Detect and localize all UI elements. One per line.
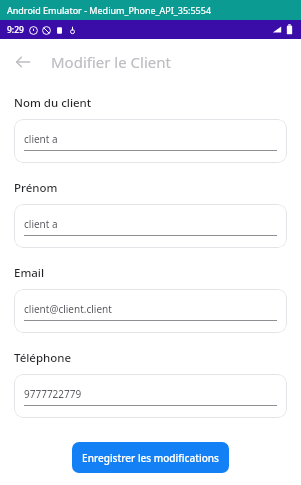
button[interactable]: 9777722779: [14, 374, 287, 418]
staticText: Nom du client: [14, 95, 92, 111]
staticText: Modifier le Client: [51, 52, 171, 72]
button[interactable]: Enregistrer les modifications: [72, 442, 229, 473]
staticText: Prénom: [14, 180, 58, 196]
staticText: client a: [24, 217, 58, 231]
staticText: client a: [24, 132, 58, 146]
button[interactable]: client a: [14, 119, 287, 163]
staticText: Enregistrer les modifications: [82, 451, 219, 465]
staticText: Android Emulator - Medium_Phone_API_35:5…: [7, 4, 212, 16]
staticText: Email: [14, 265, 45, 281]
button[interactable]: client a: [14, 204, 287, 248]
staticText: client@client.client: [24, 302, 112, 316]
button[interactable]: Back: [9, 48, 37, 76]
staticText: 9777722779: [24, 387, 82, 401]
staticText: Téléphone: [14, 350, 72, 366]
button[interactable]: client@client.client: [14, 289, 287, 333]
staticText: 9:29: [7, 24, 24, 36]
